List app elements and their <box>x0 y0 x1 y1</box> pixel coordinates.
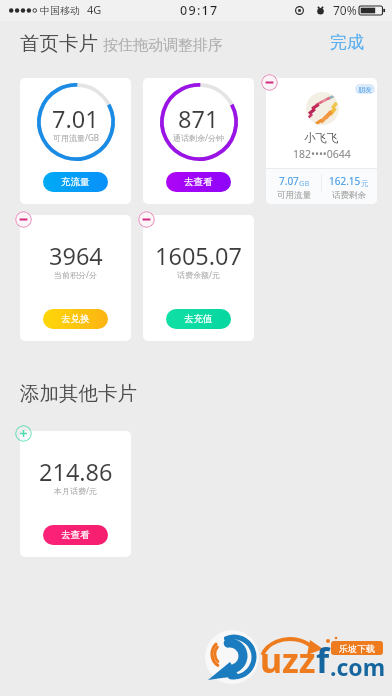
staticText: f <box>316 637 330 683</box>
staticText: 09:17 <box>180 2 219 19</box>
staticText: 可用流量/GB <box>53 132 99 143</box>
staticText: 182••••0644 <box>293 147 351 161</box>
button[interactable]: 3964 <box>20 215 131 341</box>
button[interactable]: 充流量 <box>43 172 108 192</box>
staticText: 按住拖动调整排序 <box>103 36 223 55</box>
staticText: 去充值 <box>184 313 213 325</box>
staticText: 乐坡下载 <box>339 643 375 654</box>
staticText: 首页卡片 <box>20 31 98 56</box>
staticText: 871 <box>178 103 219 135</box>
button[interactable]: 朋友 <box>266 78 377 204</box>
button[interactable]: 去充值 <box>166 309 231 329</box>
staticText: 去查看 <box>61 529 90 541</box>
staticText: 去兑换 <box>61 313 90 325</box>
staticText: GB <box>299 178 310 188</box>
staticText: 可用流量 <box>277 190 311 201</box>
button[interactable]: 移除卡片 <box>138 211 155 228</box>
staticText: 70% <box>333 2 357 18</box>
staticText: 7.07 <box>279 174 299 188</box>
staticText: 214.86 <box>39 456 113 488</box>
button[interactable]: 完成 <box>330 32 364 53</box>
staticText: 小飞飞 <box>304 131 339 145</box>
button[interactable]: 添加卡片 <box>15 425 32 442</box>
staticText: 7.01 <box>52 103 99 135</box>
staticText: 3964 <box>49 240 103 272</box>
staticText: 4G <box>87 2 102 17</box>
button[interactable]: 214.86 <box>20 431 131 557</box>
staticText: 朋友 <box>358 85 372 94</box>
button[interactable]: 871 <box>143 78 254 204</box>
staticText: 本月话费/元 <box>54 485 97 496</box>
staticText: 当前积分/分 <box>54 269 97 280</box>
staticText: 162.15 <box>329 174 361 188</box>
staticText: 充流量 <box>61 176 90 188</box>
staticText: 去查看 <box>184 176 213 188</box>
staticText: 通话剩余/分钟 <box>173 132 224 143</box>
button[interactable]: 移除卡片 <box>261 74 278 91</box>
staticText: 话费余额/元 <box>177 269 220 280</box>
staticText: .com <box>330 651 386 682</box>
button[interactable]: 去兑换 <box>43 309 108 329</box>
button[interactable]: 移除卡片 <box>15 211 32 228</box>
staticText: uzz <box>260 637 316 683</box>
staticText: 元 <box>361 179 369 188</box>
staticText: 话费剩余 <box>332 190 366 201</box>
staticText: 1605.07 <box>155 240 242 272</box>
staticText: 中国移动 <box>40 4 80 17</box>
button[interactable]: 7.01 <box>20 78 131 204</box>
button[interactable]: 1605.07 <box>143 215 254 341</box>
staticText: 添加其他卡片 <box>20 381 137 406</box>
button[interactable]: 去查看 <box>166 172 231 192</box>
button[interactable]: 去查看 <box>43 525 108 545</box>
staticText: 完成 <box>330 32 364 53</box>
